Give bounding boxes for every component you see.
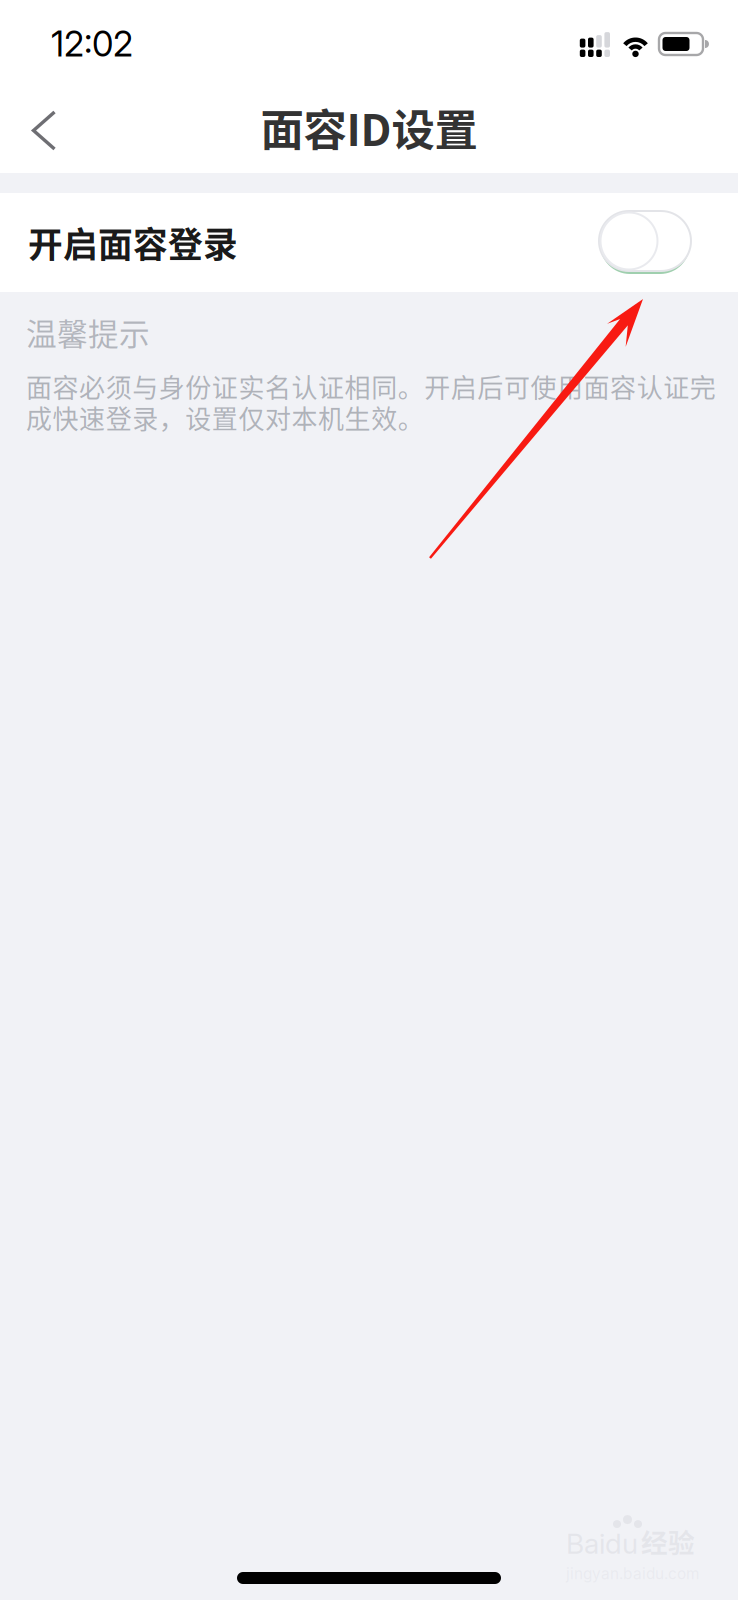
staticText: 12:02 [51,23,133,65]
staticText: Baidu [566,1527,638,1560]
staticText: 开启面容登录 [28,217,238,268]
staticText: 经验 [641,1522,695,1560]
button[interactable]: 开启面容登录 [0,193,738,292]
button[interactable]: 返回 [0,88,82,172]
staticText: 面容必须与身份证实名认证相同。开启后可使用面容认证完成快速登录，设置仅对本机生效… [26,367,716,436]
staticText: 面容ID设置 [260,96,477,158]
staticText: 温馨提示 [26,310,150,354]
